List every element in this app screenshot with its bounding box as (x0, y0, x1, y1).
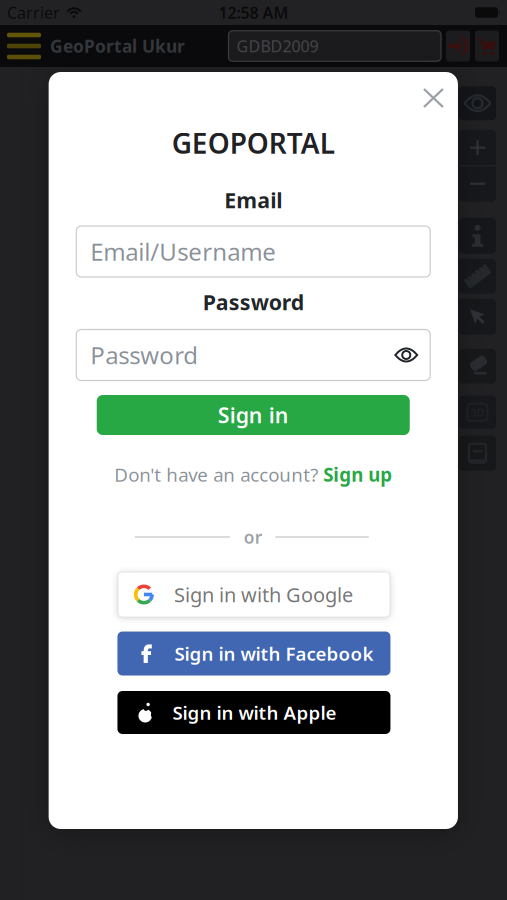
staticText: Password (90, 339, 198, 371)
staticText: Sign in with Apple (172, 700, 336, 725)
button[interactable]: Sign in with Facebook (117, 631, 390, 675)
button[interactable]: Sign in (446, 30, 470, 61)
button[interactable]: Select (459, 299, 496, 335)
button[interactable]: Zoom out (459, 166, 496, 202)
button[interactable]: Measure (459, 259, 496, 294)
staticText: GDBD2009 (236, 35, 318, 57)
button[interactable]: Close (410, 75, 457, 121)
button[interactable]: Cart (475, 30, 499, 61)
button[interactable]: Zoom in (459, 130, 496, 166)
button[interactable]: Documents (459, 436, 496, 471)
staticText: Sign in (218, 401, 289, 429)
staticText: Email/Username (90, 236, 276, 267)
button[interactable]: Sign in with Google (118, 572, 390, 617)
button[interactable]: Menu (0, 33, 41, 59)
button[interactable]: 3D view (459, 396, 496, 429)
staticText: Don't have an account? (114, 462, 318, 487)
staticText: Sign up (323, 462, 392, 487)
staticText: or (244, 525, 263, 548)
button[interactable]: Info (459, 218, 496, 254)
staticText: 12:58 AM (218, 2, 288, 23)
staticText: Sign in with Facebook (174, 641, 373, 666)
button[interactable]: Search parcel (228, 31, 441, 61)
staticText: Sign in with Google (174, 581, 353, 608)
staticText: Carrier (7, 2, 60, 23)
button[interactable]: Toggle layers (459, 86, 496, 120)
button[interactable]: Sign in (97, 395, 410, 435)
staticText: GEOPORTAL (172, 124, 335, 162)
staticText: Email (224, 186, 282, 214)
button[interactable]: Show password (395, 347, 430, 362)
staticText: Password (203, 288, 304, 316)
staticText: 3D (470, 405, 484, 419)
staticText: GeoPortal Ukur (50, 34, 185, 57)
button[interactable]: Erase (459, 349, 496, 384)
button[interactable]: Sign in with Apple (117, 691, 390, 734)
button[interactable]: Password (76, 329, 430, 380)
button[interactable]: Email/Username (76, 226, 430, 277)
button[interactable]: Don't have an account? (114, 462, 392, 487)
